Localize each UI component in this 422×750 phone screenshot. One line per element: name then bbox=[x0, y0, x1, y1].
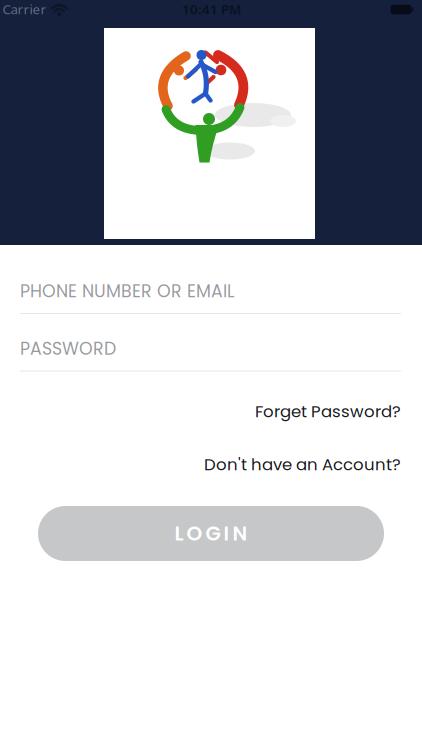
staticText: LOGIN bbox=[174, 519, 247, 547]
staticText: Forget Password? bbox=[255, 400, 401, 423]
button[interactable]: PHONE NUMBER OR EMAIL bbox=[20, 270, 401, 314]
staticText: PHONE NUMBER OR EMAIL bbox=[20, 279, 234, 303]
staticText: 10:41 PM bbox=[182, 0, 241, 18]
button[interactable]: Don't have an Account? bbox=[204, 453, 401, 476]
button[interactable]: Forget Password? bbox=[255, 400, 401, 423]
staticText: Carrier bbox=[2, 0, 46, 18]
staticText: PASSWORD bbox=[20, 336, 116, 361]
button[interactable]: PASSWORD bbox=[20, 327, 401, 371]
button[interactable]: LOGIN bbox=[38, 506, 384, 561]
staticText: Don't have an Account? bbox=[204, 453, 401, 476]
